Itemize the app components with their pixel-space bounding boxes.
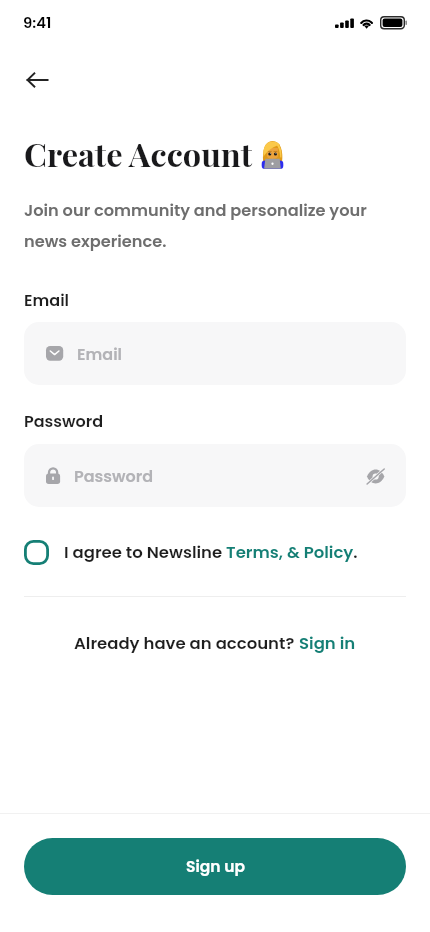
button[interactable]: Email <box>24 322 406 385</box>
button[interactable]: I agree to Newsline Terms, & Policy. <box>24 532 406 572</box>
staticText: Sign in <box>299 632 356 655</box>
button[interactable]: Back <box>13 56 61 104</box>
staticText: Join our community and personalize your … <box>24 199 367 253</box>
button[interactable]: Show password <box>363 462 391 490</box>
staticText: Already have an account? <box>74 632 299 655</box>
staticText: Create Account <box>24 132 253 175</box>
staticText: Sign up <box>186 856 245 878</box>
staticText: Email <box>77 343 123 365</box>
staticText: Email <box>24 289 70 311</box>
button[interactable]: Sign up <box>24 838 406 895</box>
staticText: 9:41 <box>23 12 52 33</box>
staticText: Password <box>24 410 104 432</box>
staticText: I agree to Newsline Terms, & Policy. <box>64 541 358 564</box>
button[interactable]: Password <box>24 444 406 507</box>
staticText: Password <box>74 465 154 487</box>
button[interactable]: Sign in <box>299 632 356 655</box>
